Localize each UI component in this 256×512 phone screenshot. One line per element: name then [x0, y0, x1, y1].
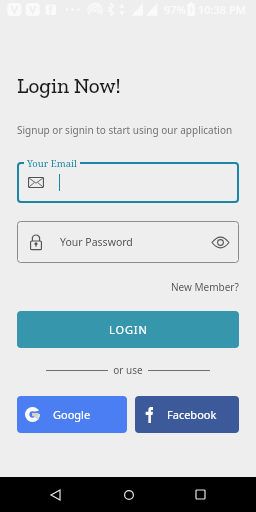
staticText: or use — [108, 363, 148, 377]
staticText: 97% — [164, 2, 186, 17]
button[interactable]: Recent apps — [183, 477, 218, 512]
staticText: Login Now! — [17, 73, 121, 98]
button[interactable]: Home — [111, 477, 146, 512]
staticText: Google — [53, 407, 91, 422]
button[interactable]: LOGIN — [17, 311, 239, 348]
staticText: Facebook — [167, 407, 217, 422]
button[interactable]: Back — [38, 477, 73, 512]
button[interactable]: Show password — [210, 232, 230, 252]
button[interactable]: Google — [17, 396, 127, 433]
button[interactable]: Facebook — [135, 396, 239, 433]
staticText: 10:38 PM — [198, 2, 246, 17]
button[interactable]: New Member? — [171, 280, 239, 294]
staticText: Your Email — [27, 157, 77, 170]
staticText: Your Password — [60, 235, 133, 249]
staticText: LOGIN — [109, 322, 148, 337]
staticText: Signup or signin to start using our appl… — [17, 123, 233, 137]
staticText: New Member? — [171, 280, 239, 294]
